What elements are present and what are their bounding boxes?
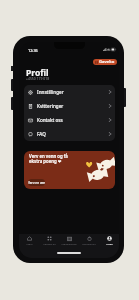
staticText: Kategorier — [43, 242, 56, 245]
staticText: 12:36 — [28, 48, 38, 53]
staticText: Gavekort — [99, 59, 115, 65]
button[interactable]: Kvitteringer — [24, 99, 115, 113]
staticText: +4550 179 018 — [26, 76, 50, 81]
staticText: Handlekurv — [82, 242, 96, 245]
staticText: Kontakt oss — [37, 117, 63, 123]
staticText: Hjem — [26, 242, 33, 245]
button[interactable]: Profil — [99, 236, 119, 248]
button[interactable]: Gavekort — [93, 59, 117, 65]
button[interactable]: Kontakt oss — [24, 113, 115, 127]
button[interactable]: Innstillinger — [24, 85, 115, 99]
staticText: Profil — [26, 67, 49, 79]
button[interactable]: FAQ — [24, 127, 115, 141]
button[interactable]: Hjem — [19, 236, 39, 248]
staticText: Profil — [106, 242, 113, 245]
staticText: Verv en venn og få ekstra poeng ❤ — [29, 153, 68, 164]
button[interactable]: Medlemskap — [59, 236, 79, 248]
button[interactable]: Kategorier — [39, 236, 59, 248]
staticText: Kvitteringer — [37, 103, 64, 109]
staticText: Medlemskap — [61, 242, 77, 245]
staticText: FAQ — [37, 131, 46, 137]
staticText: Innstillinger — [37, 89, 64, 95]
button[interactable]: Handlekurv — [79, 236, 99, 248]
button[interactable]: Verv en venn — [28, 179, 45, 186]
staticText: Verv en venn — [28, 181, 45, 185]
